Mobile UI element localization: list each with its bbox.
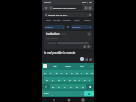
staticText: Shopping [53,19,62,22]
staticText: m'a [80,65,84,68]
staticText: o [86,71,88,74]
button[interactable]: o [84,70,89,75]
button[interactable]: ?123 [42,91,50,96]
button[interactable]: News [72,18,82,23]
button[interactable]: m'a [75,63,89,69]
button[interactable]: a [42,70,48,75]
button[interactable]: k [82,77,87,82]
button[interactable]: n [80,84,86,89]
button[interactable]: g [67,77,72,82]
button[interactable]: w [50,84,56,89]
staticText: nom féminin [46,37,59,40]
button[interactable]: Shift [42,84,50,89]
staticText: t [66,71,67,74]
button[interactable]: mine [61,63,75,69]
staticText: Vidéos [84,19,91,22]
staticText: p [91,71,93,74]
staticText: a [44,71,46,74]
button[interactable]: Share [87,45,90,48]
staticText: u [76,71,78,74]
button[interactable]: Search [84,91,94,96]
button[interactable]: z [48,70,54,75]
button[interactable]: Backspace [86,84,94,89]
staticText: GIF [53,65,57,68]
button[interactable]: t [64,70,69,75]
button[interactable]: x [56,84,62,89]
button[interactable]: u [74,70,79,75]
button[interactable]: Shopping [53,18,62,23]
button[interactable]: Copy [83,45,86,48]
staticText: v [70,85,72,88]
staticText: b [76,85,78,88]
staticText: k [84,78,86,81]
staticText: g [69,78,71,81]
staticText: News [74,19,80,22]
staticText: . [81,92,82,95]
button[interactable]: Google Lens [80,57,84,61]
staticText: d [58,78,60,81]
button[interactable]: More [89,58,92,61]
staticText: y [71,71,73,74]
staticText: Français [72,26,81,29]
button[interactable]: Anglais [44,25,65,29]
staticText: google.com/search [53,6,76,9]
button[interactable]: , [50,91,55,96]
button[interactable]: Home [44,6,48,10]
staticText: j [79,78,80,81]
button[interactable]: c [62,84,68,89]
button[interactable]: y [69,70,74,75]
staticText: Anglais [45,26,53,29]
staticText: r [61,71,63,74]
staticText: le mal possible le monde [44,51,76,55]
button[interactable]: r [59,70,64,75]
button[interactable]: quelle est la tradu [44,12,92,17]
button[interactable]: Expand suggestions [89,64,93,68]
button[interactable]: q [44,77,50,82]
button[interactable]: google.com/search [49,5,83,10]
button[interactable]: Recents [80,97,85,102]
button[interactable]: Vidéos [82,18,92,23]
button[interactable]: . [79,91,84,96]
button[interactable]: s [50,77,56,82]
staticText: n [82,85,84,88]
button[interactable]: traduction [44,31,92,49]
button[interactable]: f [62,77,67,82]
button[interactable]: Swap languages [66,25,70,29]
button[interactable]: Tabs [84,6,88,10]
staticText: f [64,78,65,81]
staticText: w [52,85,54,88]
button[interactable]: i [79,70,84,75]
button[interactable]: h [72,77,77,82]
staticText: h [74,78,76,81]
staticText: Images [63,19,71,22]
staticText: ?123 [44,92,49,95]
staticText: z [50,71,52,74]
button[interactable]: Français [71,25,92,29]
button[interactable]: Keyboard settings [43,64,47,68]
staticText: traduction [46,32,60,36]
button[interactable]: d [56,77,62,82]
staticText: i [81,71,82,74]
button[interactable]: Back [51,97,56,102]
staticText: l [89,78,90,81]
staticText: c [64,85,66,88]
button[interactable]: More options [88,6,92,10]
button[interactable]: e [54,70,59,75]
staticText: s [52,78,54,81]
button[interactable]: j [77,77,82,82]
staticText: Tous [46,19,51,22]
button[interactable]: l [87,77,92,82]
button[interactable]: p [89,70,94,75]
button[interactable]: Translate [85,58,88,61]
button[interactable]: Images [62,18,72,23]
button[interactable]: GIF [48,63,61,69]
button[interactable]: b [74,84,80,89]
button[interactable]: Home [66,97,71,102]
button[interactable]: Tous [44,18,53,23]
button[interactable]: v [68,84,74,89]
staticText: mine [65,65,71,68]
staticText: e [56,71,58,74]
staticText: q [46,78,48,81]
